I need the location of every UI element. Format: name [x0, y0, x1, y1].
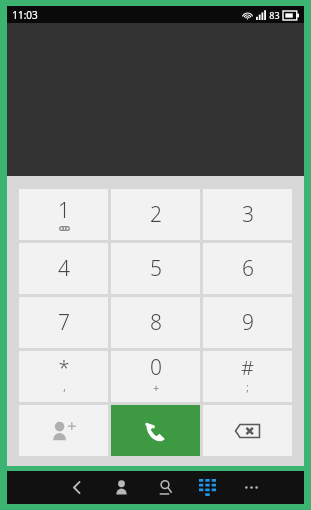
staticText: 8	[150, 308, 162, 337]
button[interactable]: #	[203, 351, 292, 402]
staticText: ,	[63, 380, 66, 394]
button[interactable]: 0	[111, 351, 200, 402]
staticText: 9	[242, 308, 254, 337]
button[interactable]: Dialpad	[194, 471, 220, 504]
staticText: 83	[269, 9, 280, 21]
staticText: 4	[58, 254, 70, 283]
staticText: 0	[150, 353, 162, 382]
button[interactable]: Contacts	[108, 471, 134, 504]
staticText: ;	[246, 380, 249, 394]
button[interactable]: 4	[19, 243, 108, 294]
button[interactable]: Call	[111, 405, 200, 456]
staticText: 11:03	[12, 8, 38, 22]
staticText: 5	[150, 254, 162, 283]
staticText: +	[153, 381, 159, 395]
button[interactable]: *	[19, 351, 108, 402]
button[interactable]: 7	[19, 297, 108, 348]
staticText: *	[58, 354, 70, 381]
button[interactable]: 8	[111, 297, 200, 348]
staticText: 2	[150, 200, 162, 229]
button[interactable]: Add contact	[19, 405, 108, 456]
staticText: 3	[242, 200, 254, 229]
staticText: #	[241, 354, 254, 381]
staticText: 7	[58, 308, 70, 337]
button[interactable]: 9	[203, 297, 292, 348]
button[interactable]: Search contacts	[152, 471, 178, 504]
button[interactable]: 3	[203, 189, 292, 240]
button[interactable]: 6	[203, 243, 292, 294]
button[interactable]: Back	[64, 471, 90, 504]
button[interactable]: More options	[238, 471, 264, 504]
button[interactable]: Backspace	[203, 405, 292, 456]
staticText: 6	[242, 254, 254, 283]
button[interactable]: 1	[19, 189, 108, 240]
button[interactable]: 5	[111, 243, 200, 294]
staticText: 1	[58, 196, 70, 225]
button[interactable]: 2	[111, 189, 200, 240]
